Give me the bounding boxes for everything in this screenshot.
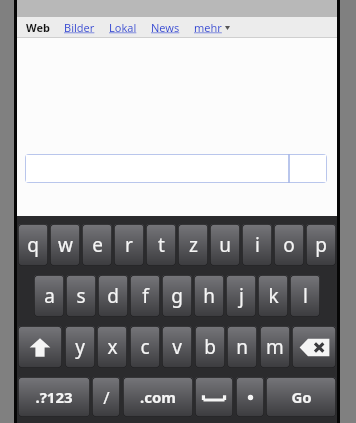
button[interactable]: / bbox=[92, 377, 120, 417]
staticText: t bbox=[158, 232, 165, 258]
button[interactable]: s bbox=[66, 275, 96, 317]
button[interactable]: Sucheingabe bbox=[25, 154, 289, 183]
button[interactable]: Suche bbox=[289, 154, 327, 183]
button[interactable]: g bbox=[162, 275, 192, 317]
button[interactable]: Space bbox=[195, 377, 233, 417]
staticText: d bbox=[107, 283, 119, 309]
staticText: x bbox=[107, 334, 118, 360]
button[interactable]: j bbox=[226, 275, 256, 317]
staticText: j bbox=[239, 283, 244, 309]
staticText: w bbox=[58, 232, 73, 258]
staticText: .?123 bbox=[35, 387, 73, 407]
button[interactable]: b bbox=[195, 326, 225, 368]
staticText: i bbox=[255, 232, 260, 258]
button[interactable]: n bbox=[227, 326, 257, 368]
button[interactable]: p bbox=[306, 224, 336, 266]
button[interactable]: i bbox=[242, 224, 272, 266]
button[interactable]: z bbox=[178, 224, 208, 266]
staticText: v bbox=[172, 334, 182, 360]
button[interactable]: Lokal bbox=[109, 20, 137, 35]
button[interactable]: m bbox=[260, 326, 290, 368]
staticText: y bbox=[75, 334, 85, 360]
staticText: g bbox=[171, 283, 183, 309]
staticText: a bbox=[44, 283, 55, 309]
button[interactable]: f bbox=[130, 275, 160, 317]
button[interactable]: Shift bbox=[18, 326, 62, 368]
staticText: c bbox=[140, 334, 150, 360]
staticText: q bbox=[27, 232, 39, 258]
staticText: r bbox=[125, 232, 133, 258]
staticText: mehr bbox=[194, 20, 222, 35]
staticText: f bbox=[142, 283, 149, 309]
button[interactable]: k bbox=[258, 275, 288, 317]
staticText: o bbox=[283, 232, 295, 258]
button[interactable]: e bbox=[82, 224, 112, 266]
staticText: / bbox=[103, 386, 110, 409]
button[interactable]: .com bbox=[123, 377, 193, 417]
button[interactable]: News bbox=[151, 20, 180, 35]
staticText: p bbox=[315, 232, 327, 258]
button[interactable]: r bbox=[114, 224, 144, 266]
button[interactable]: Period bbox=[236, 377, 264, 417]
staticText: l bbox=[303, 283, 308, 309]
staticText: .com bbox=[140, 387, 176, 407]
button[interactable]: mehr bbox=[194, 20, 230, 35]
button[interactable]: d bbox=[98, 275, 128, 317]
button[interactable]: t bbox=[146, 224, 176, 266]
button[interactable]: q bbox=[18, 224, 48, 266]
button[interactable]: Backspace bbox=[292, 326, 336, 368]
button[interactable]: .?123 bbox=[18, 377, 90, 417]
staticText: m bbox=[266, 334, 284, 360]
staticText: h bbox=[203, 283, 215, 309]
button[interactable]: x bbox=[97, 326, 127, 368]
staticText: b bbox=[204, 334, 216, 360]
staticText: z bbox=[189, 232, 198, 258]
button[interactable]: l bbox=[290, 275, 320, 317]
button[interactable]: o bbox=[274, 224, 304, 266]
button[interactable]: Web bbox=[26, 20, 50, 35]
staticText: Go bbox=[291, 387, 312, 407]
button[interactable]: c bbox=[130, 326, 160, 368]
button[interactable]: u bbox=[210, 224, 240, 266]
button[interactable]: v bbox=[162, 326, 192, 368]
button[interactable]: y bbox=[65, 326, 95, 368]
staticText: e bbox=[92, 232, 103, 258]
staticText: s bbox=[76, 283, 86, 309]
button[interactable]: Bilder bbox=[64, 20, 95, 35]
staticText: k bbox=[268, 283, 279, 309]
staticText: u bbox=[219, 232, 231, 258]
button[interactable]: w bbox=[50, 224, 80, 266]
button[interactable]: Go bbox=[266, 377, 336, 417]
button[interactable]: h bbox=[194, 275, 224, 317]
staticText: n bbox=[236, 334, 248, 360]
button[interactable]: a bbox=[34, 275, 64, 317]
